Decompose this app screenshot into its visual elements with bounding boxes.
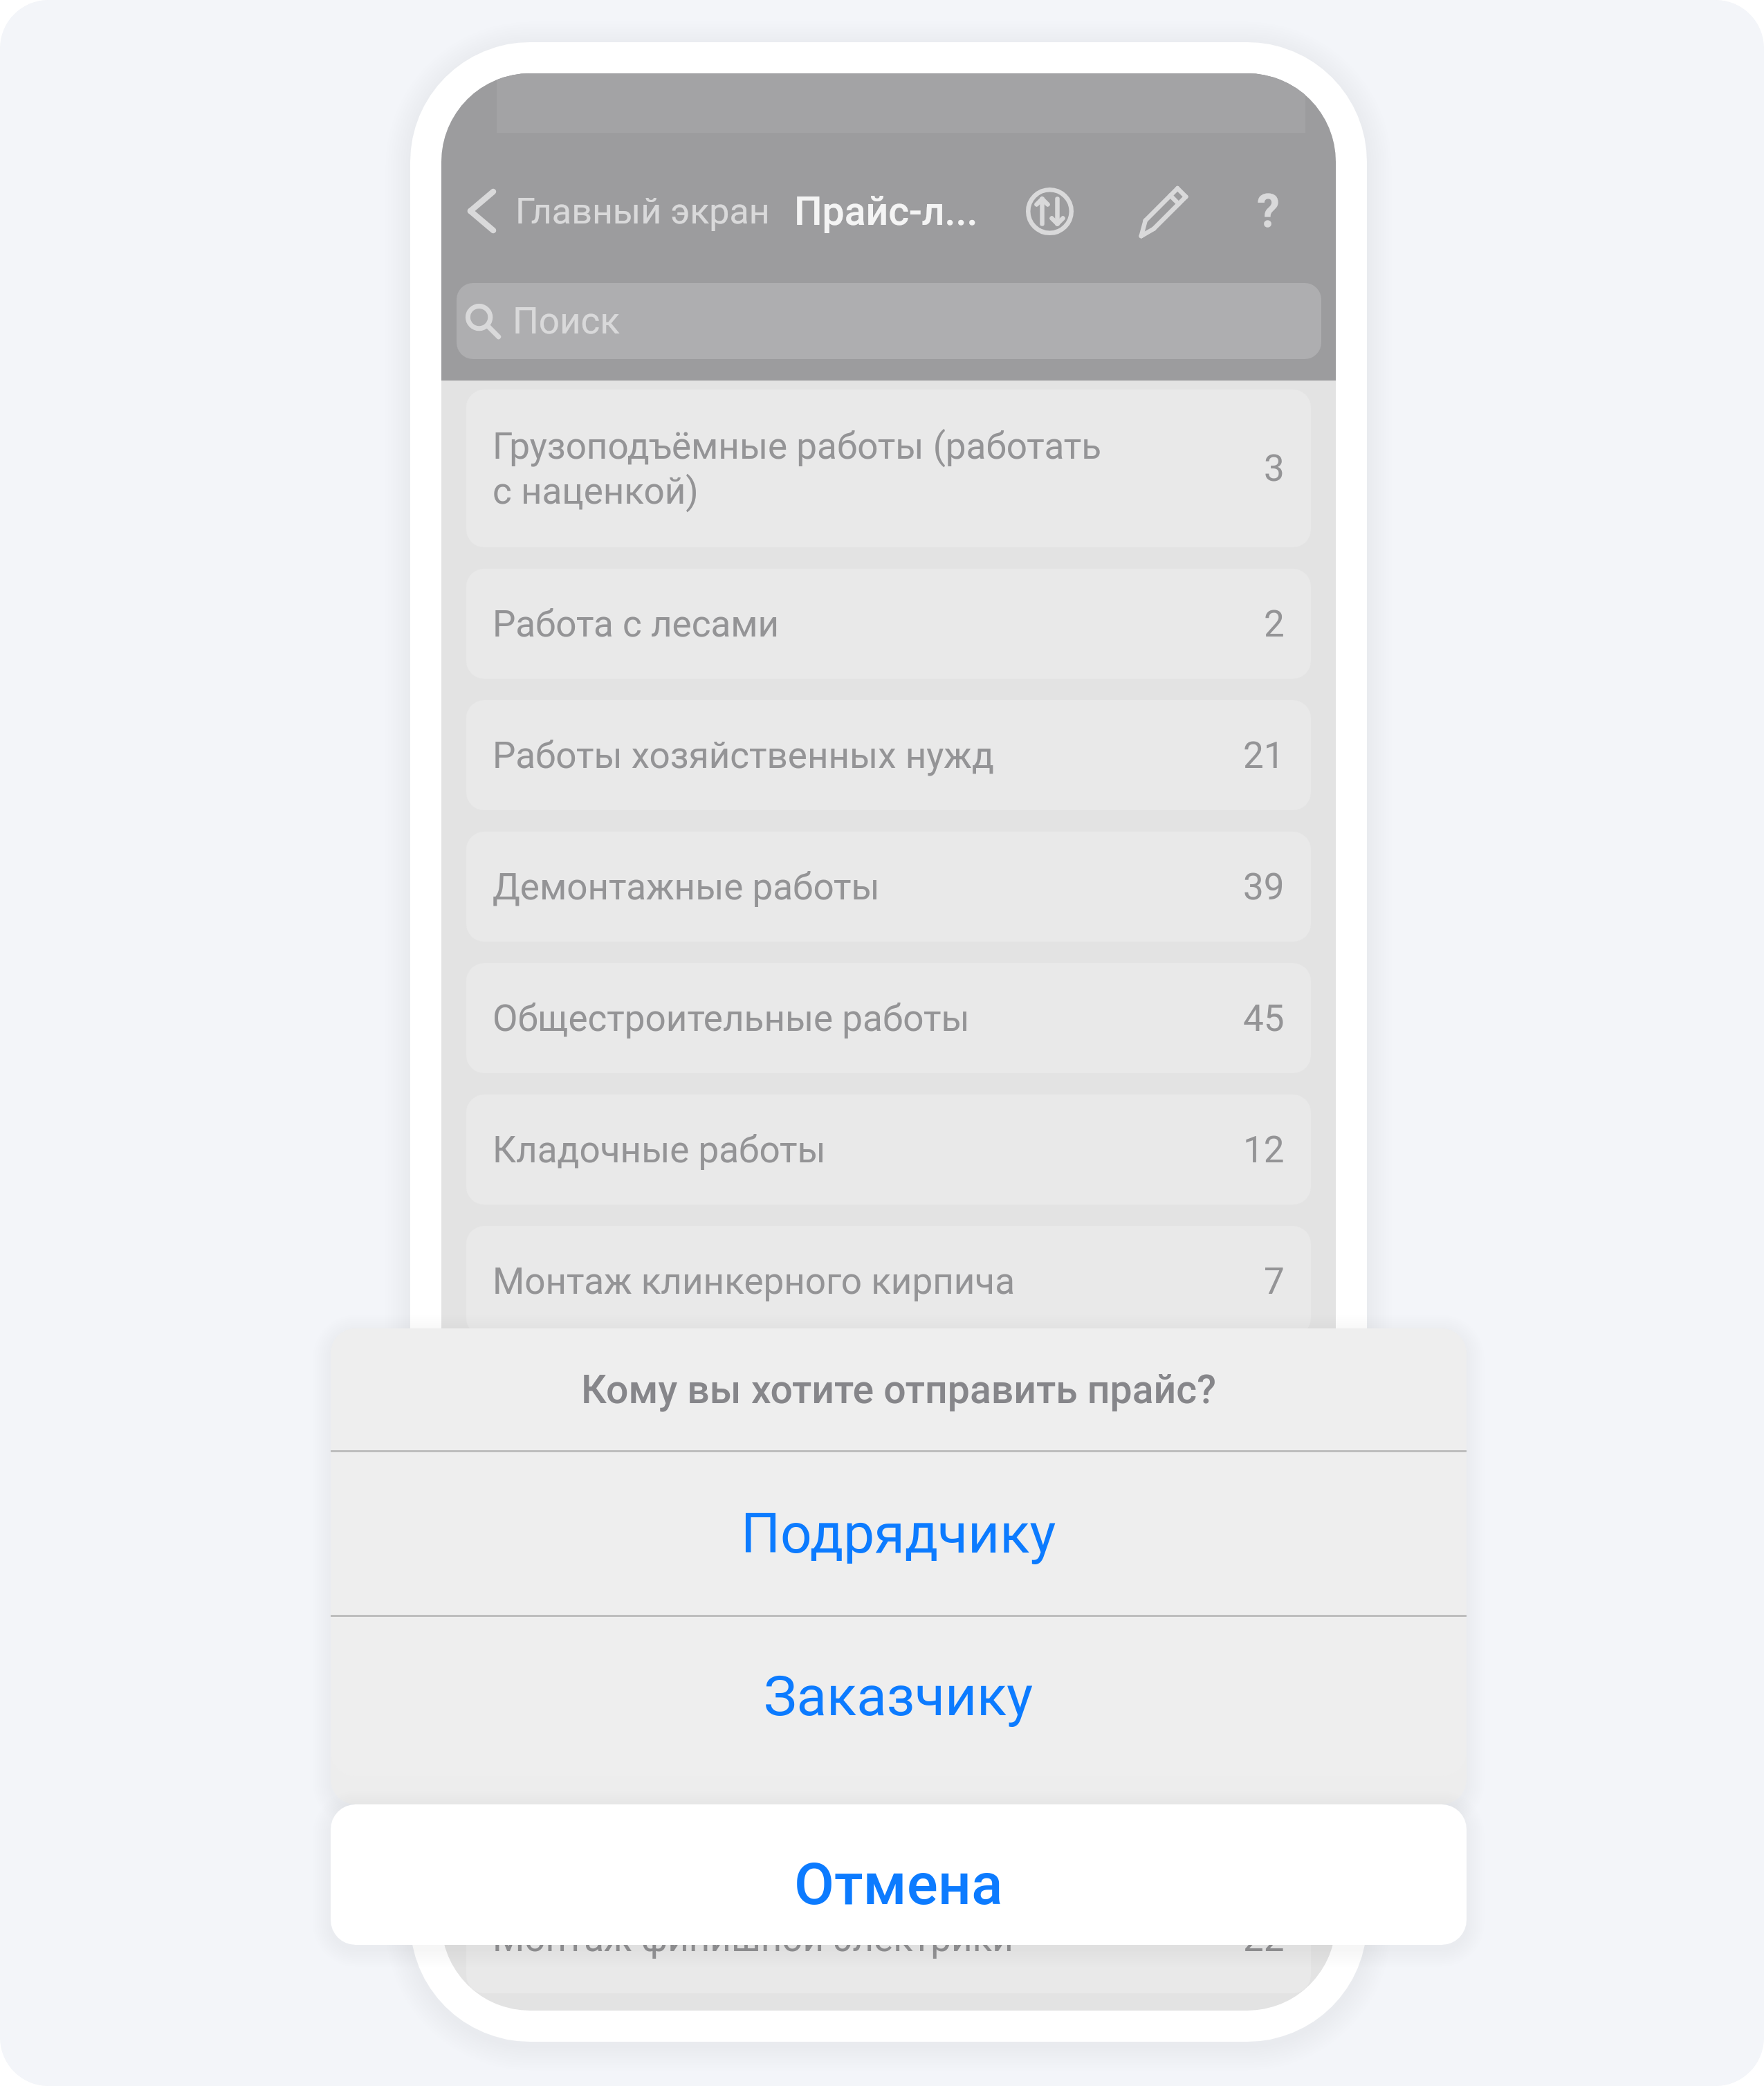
button[interactable]: Подрядчику	[331, 1452, 1467, 1615]
staticText: Отделочные работы	[493, 1654, 1243, 1697]
staticText: Главный экран	[515, 190, 770, 232]
staticText: 21	[1243, 734, 1285, 777]
staticText: Прайс-л...	[794, 188, 978, 235]
staticText: Поиск	[513, 300, 621, 342]
staticText: Сантехнические работы	[493, 1786, 1243, 1829]
staticText: 7	[1264, 1260, 1285, 1303]
staticText: Отмена	[794, 1850, 1003, 1918]
button[interactable]: Монтаж перегородок	[466, 1489, 1311, 1599]
staticText: Монтаж напольных покрытий	[493, 1391, 1243, 1434]
button[interactable]: Монтаж финишной электрики	[466, 1883, 1311, 1993]
staticText: 45	[1243, 997, 1285, 1040]
staticText: Демонтажные работы	[493, 866, 1243, 908]
button[interactable]: Sort	[1011, 173, 1087, 249]
button[interactable]: Демонтажные работы	[466, 832, 1311, 942]
staticText: 22	[1243, 1917, 1285, 1960]
button[interactable]: Работа с лесами	[466, 569, 1311, 679]
button[interactable]: Сантехнические работы	[466, 1752, 1311, 1862]
staticText: Работа с лесами	[493, 603, 1264, 646]
button[interactable]: Кладочные работы	[466, 1095, 1311, 1205]
staticText: 12	[1243, 1128, 1285, 1171]
button[interactable]: Главный экран	[515, 168, 770, 254]
button[interactable]: Отмена	[331, 1804, 1467, 1945]
button[interactable]: Грузоподъёмные работы (работать с наценк…	[466, 390, 1311, 547]
staticText: Монтаж клинкерного кирпича	[493, 1260, 1264, 1303]
button[interactable]: Edit	[1128, 173, 1204, 249]
button[interactable]: Монтаж напольных покрытий	[466, 1357, 1311, 1467]
button[interactable]: Общестроительные работы	[466, 963, 1311, 1073]
staticText: 2	[1264, 603, 1285, 646]
staticText: Кладочные работы	[493, 1128, 1243, 1171]
button[interactable]: Back	[462, 168, 505, 254]
staticText: 39	[1243, 866, 1285, 908]
button[interactable]: Заказчику	[331, 1617, 1467, 1776]
button[interactable]: Help	[1230, 173, 1306, 249]
button[interactable]: Монтаж клинкерного кирпича	[466, 1226, 1311, 1336]
staticText: Грузоподъёмные работы (работать с наценк…	[493, 425, 1264, 513]
staticText: Кому вы хотите отправить прайс?	[581, 1366, 1216, 1413]
button[interactable]: Отделочные работы	[466, 1620, 1311, 1730]
staticText: Подрядчику	[741, 1501, 1056, 1566]
staticText: 26	[1243, 1786, 1285, 1829]
staticText: ?	[1257, 185, 1280, 238]
staticText: Монтаж финишной электрики	[493, 1917, 1243, 1960]
staticText: Монтаж перегородок	[493, 1523, 1243, 1566]
staticText: Общестроительные работы	[493, 997, 1243, 1040]
staticText: Заказчику	[764, 1664, 1033, 1729]
button[interactable]: Поиск	[457, 283, 1321, 359]
staticText: 3	[1264, 447, 1285, 490]
button[interactable]: Работы хозяйственных нужд	[466, 700, 1311, 810]
staticText: Работы хозяйственных нужд	[493, 734, 1243, 777]
